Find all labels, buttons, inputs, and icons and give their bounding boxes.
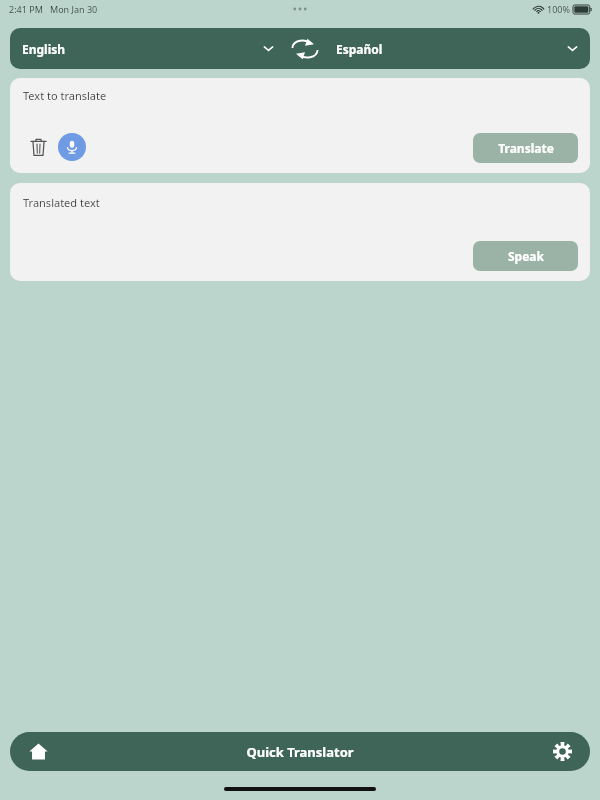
staticText: Quick Translator [246, 743, 354, 761]
button[interactable]: Clear text [25, 134, 51, 160]
staticText: Translate [498, 140, 554, 156]
staticText: Mon Jan 30 [50, 3, 98, 15]
button[interactable]: Translate [473, 133, 578, 163]
button[interactable]: Swap languages [282, 28, 328, 69]
staticText: Translated text [23, 195, 100, 210]
staticText: 100% [547, 3, 570, 15]
staticText: Text to translate [23, 88, 107, 103]
staticText: Español [336, 41, 383, 57]
button[interactable]: Settings [534, 732, 590, 771]
button[interactable]: Español [328, 28, 590, 69]
button[interactable]: English [10, 28, 282, 69]
staticText: 2:41 PM [9, 3, 43, 15]
staticText: English [22, 41, 66, 57]
staticText: Speak [508, 248, 544, 264]
button[interactable]: Home [10, 732, 66, 771]
button[interactable]: Speak [473, 241, 578, 271]
button[interactable]: Voice input [58, 133, 86, 161]
